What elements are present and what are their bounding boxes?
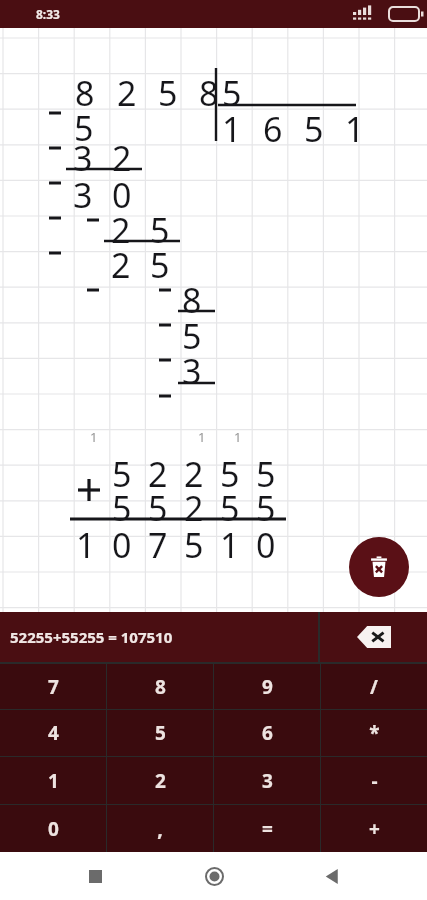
button[interactable]: Recents xyxy=(71,852,119,900)
staticText: 2 xyxy=(117,70,137,116)
button[interactable]: 4 xyxy=(0,710,106,756)
staticText: 5 xyxy=(220,451,240,497)
staticText: 5 xyxy=(148,485,168,531)
staticText: 3 xyxy=(73,172,93,218)
staticText: 9 xyxy=(262,674,273,700)
staticText: 5 xyxy=(304,106,324,152)
button[interactable]: 52255+55255 = 107510 xyxy=(0,612,318,662)
staticText: 2 xyxy=(148,451,168,497)
button[interactable]: 2 xyxy=(107,757,213,804)
staticText: 6 xyxy=(263,106,283,152)
button[interactable]: - xyxy=(321,757,427,804)
button[interactable]: 3 xyxy=(214,757,320,804)
staticText: 5 xyxy=(222,70,242,116)
staticText: 8 xyxy=(155,674,166,700)
staticText: 2 xyxy=(111,207,131,253)
staticText: 2 xyxy=(111,242,131,288)
staticText: 1 xyxy=(220,522,240,568)
staticText: 5 xyxy=(150,207,170,253)
staticText: 0 xyxy=(48,816,59,842)
button[interactable]: 6 xyxy=(214,710,320,756)
staticText: 1 xyxy=(90,428,98,446)
staticText: - xyxy=(371,768,378,794)
button[interactable]: 9 xyxy=(214,664,320,709)
button[interactable]: Backspace xyxy=(320,612,427,662)
button[interactable]: / xyxy=(321,664,427,709)
button[interactable]: Clear xyxy=(349,537,409,597)
button[interactable]: 0 xyxy=(0,805,106,852)
staticText: 2 xyxy=(112,135,132,181)
staticText: 1 xyxy=(198,428,206,446)
staticText: 7 xyxy=(148,522,168,568)
staticText: 52255+55255 = 107510 xyxy=(10,627,173,647)
staticText: 5 xyxy=(150,242,170,288)
button[interactable]: 5 xyxy=(107,710,213,756)
staticText: = xyxy=(262,816,273,842)
button[interactable]: 7 xyxy=(0,664,106,709)
staticText: 0 xyxy=(112,522,132,568)
staticText: 5 xyxy=(220,485,240,531)
button[interactable]: + xyxy=(321,805,427,852)
button[interactable]: 8 xyxy=(107,664,213,709)
staticText: 1 xyxy=(345,106,365,152)
staticText: 1 xyxy=(234,428,242,446)
staticText: 8 xyxy=(199,70,219,116)
staticText: 5 xyxy=(74,105,94,151)
staticText: 2 xyxy=(184,485,204,531)
staticText: 1 xyxy=(48,768,59,794)
staticText: 3 xyxy=(182,348,202,394)
staticText: 5 xyxy=(256,485,276,531)
staticText: 5 xyxy=(112,485,132,531)
staticText: 8 xyxy=(75,70,95,116)
staticText: 2 xyxy=(155,768,166,794)
staticText: 0 xyxy=(256,522,276,568)
button[interactable]: * xyxy=(321,710,427,756)
staticText: 2 xyxy=(184,451,204,497)
staticText: 0 xyxy=(112,172,132,218)
staticText: / xyxy=(370,674,378,700)
staticText: 3 xyxy=(262,768,273,794)
staticText: 5 xyxy=(112,451,132,497)
staticText: + xyxy=(369,816,380,842)
staticText: , xyxy=(157,815,163,842)
button[interactable]: Home xyxy=(190,852,238,900)
staticText: 5 xyxy=(182,313,202,359)
staticText: 3 xyxy=(73,135,93,181)
staticText: 5 xyxy=(256,451,276,497)
staticText: 1 xyxy=(222,106,242,152)
button[interactable]: , xyxy=(107,805,213,852)
button[interactable]: 1 xyxy=(0,757,106,804)
staticText: * xyxy=(369,720,380,746)
staticText: 8 xyxy=(182,277,202,323)
staticText: 5 xyxy=(155,720,166,746)
staticText: 1 xyxy=(76,522,96,568)
staticText: 5 xyxy=(184,522,204,568)
staticText: 5 xyxy=(158,70,178,116)
staticText: 4 xyxy=(48,720,59,746)
staticText: 6 xyxy=(262,720,273,746)
button[interactable]: Back xyxy=(308,852,356,900)
staticText: 8:33 xyxy=(36,6,60,22)
button[interactable]: = xyxy=(214,805,320,852)
staticText: 7 xyxy=(48,674,59,700)
